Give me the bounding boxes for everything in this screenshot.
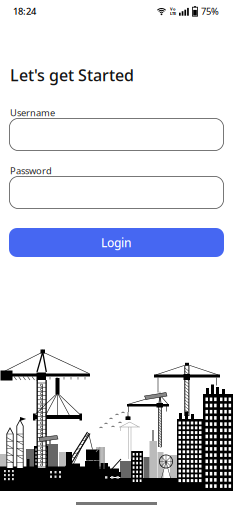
button[interactable]: Login <box>9 228 224 257</box>
staticText: Login <box>101 234 132 250</box>
button[interactable]: Password <box>9 176 224 209</box>
staticText: Let's get Started <box>10 64 134 86</box>
staticText: Username <box>10 106 55 119</box>
staticText: 75% <box>201 5 219 17</box>
staticText: Vo <box>170 6 176 12</box>
staticText: LTE <box>170 11 176 16</box>
staticText: 18:24 <box>13 5 36 17</box>
button[interactable]: Username <box>9 118 224 151</box>
staticText: Password <box>10 164 52 177</box>
